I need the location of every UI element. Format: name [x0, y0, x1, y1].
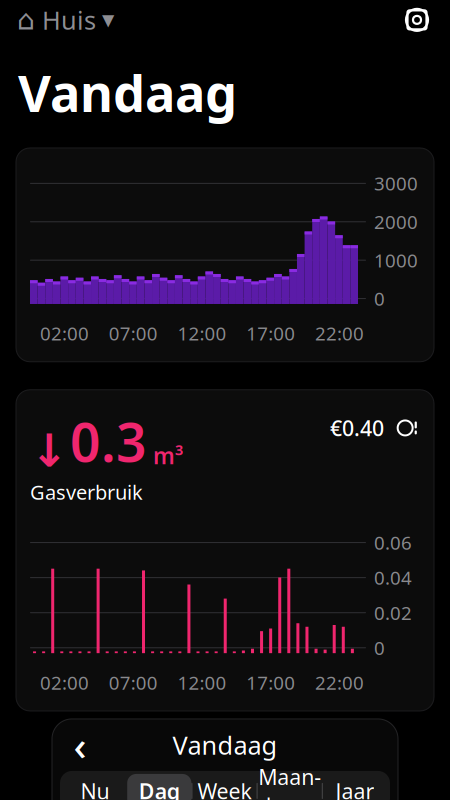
staticText: 17:00	[246, 321, 295, 346]
staticText: 3000	[374, 171, 418, 196]
staticText: 0.06	[374, 530, 412, 555]
staticText: Nu	[81, 777, 110, 800]
staticText: 0.3	[70, 406, 147, 477]
button[interactable]: Nu	[63, 774, 127, 800]
staticText: Maand	[258, 763, 321, 800]
button[interactable]: Dag	[127, 774, 191, 800]
staticText: m³	[153, 440, 183, 471]
button[interactable]: Back	[58, 725, 102, 765]
button[interactable]: ⌂	[16, 0, 114, 43]
staticText: 22:00	[315, 321, 364, 346]
staticText: 0.04	[374, 565, 412, 590]
staticText: ▼	[102, 11, 114, 29]
staticText: 07:00	[109, 321, 158, 346]
staticText: ↓	[30, 425, 68, 477]
button[interactable]: Maand	[258, 774, 322, 800]
staticText: 0	[374, 286, 385, 311]
staticText: 0	[374, 635, 385, 660]
button[interactable]: Jaar	[323, 774, 387, 800]
staticText: 0.02	[374, 600, 412, 625]
staticText: 22:00	[315, 670, 364, 695]
staticText: 07:00	[109, 670, 158, 695]
staticText: Vandaag	[18, 59, 237, 126]
staticText: ⌂	[17, 4, 35, 36]
staticText: ‹	[73, 718, 86, 771]
staticText: 12:00	[177, 321, 226, 346]
staticText: 02:00	[40, 670, 89, 695]
staticText: Week	[197, 777, 251, 800]
staticText: Dag	[139, 777, 180, 800]
button[interactable]: Week	[192, 774, 257, 800]
button[interactable]: Settings	[400, 3, 434, 37]
staticText: Huis	[42, 3, 96, 37]
staticText: 02:00	[40, 321, 89, 346]
staticText: Gasverbruik	[30, 479, 143, 505]
staticText: 2000	[374, 209, 418, 234]
staticText: 12:00	[177, 670, 226, 695]
staticText: €0.40	[330, 414, 384, 442]
staticText: 17:00	[246, 670, 295, 695]
staticText: 1000	[374, 248, 418, 273]
staticText: Vandaag	[172, 728, 277, 762]
staticText: Jaar	[335, 777, 374, 800]
